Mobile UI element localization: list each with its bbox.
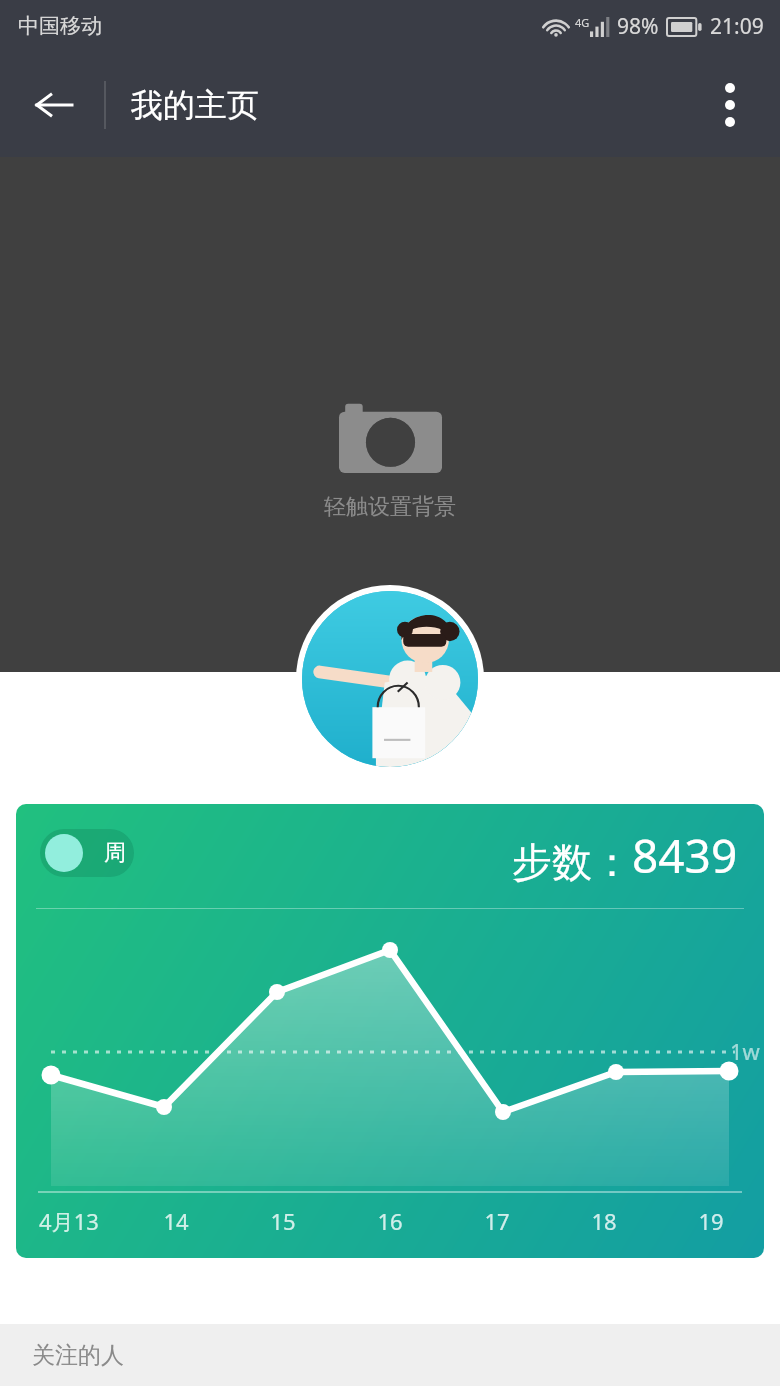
staticText: 19 [698, 1206, 724, 1236]
staticText: 16 [377, 1206, 403, 1236]
button[interactable]: 周 [40, 829, 134, 877]
staticText: 轻触设置背景 [324, 493, 456, 521]
staticText: 我的主页 [131, 85, 259, 125]
staticText: 4G [575, 15, 590, 30]
staticText: 17 [484, 1206, 510, 1236]
staticText: 1w [730, 1036, 760, 1066]
staticText: 步数： [512, 837, 632, 887]
staticText: 21:09 [710, 12, 764, 41]
staticText: 关注的人 [32, 1341, 124, 1370]
button[interactable]: 轻触设置背景 [0, 157, 780, 672]
staticText: 8439 [632, 824, 738, 887]
button[interactable]: Back [18, 69, 90, 141]
staticText: 98% [617, 12, 659, 41]
staticText: 周 [104, 839, 126, 867]
button[interactable]: 周 [16, 804, 764, 1258]
button[interactable]: 关注的人 [0, 1324, 780, 1386]
button[interactable]: More options [694, 69, 766, 141]
staticText: 中国移动 [18, 13, 102, 39]
staticText: 18 [591, 1206, 617, 1236]
button[interactable]: Profile photo [296, 585, 484, 773]
staticText: 4月13 [39, 1206, 99, 1236]
staticText: 15 [270, 1206, 296, 1236]
staticText: 14 [163, 1206, 189, 1236]
